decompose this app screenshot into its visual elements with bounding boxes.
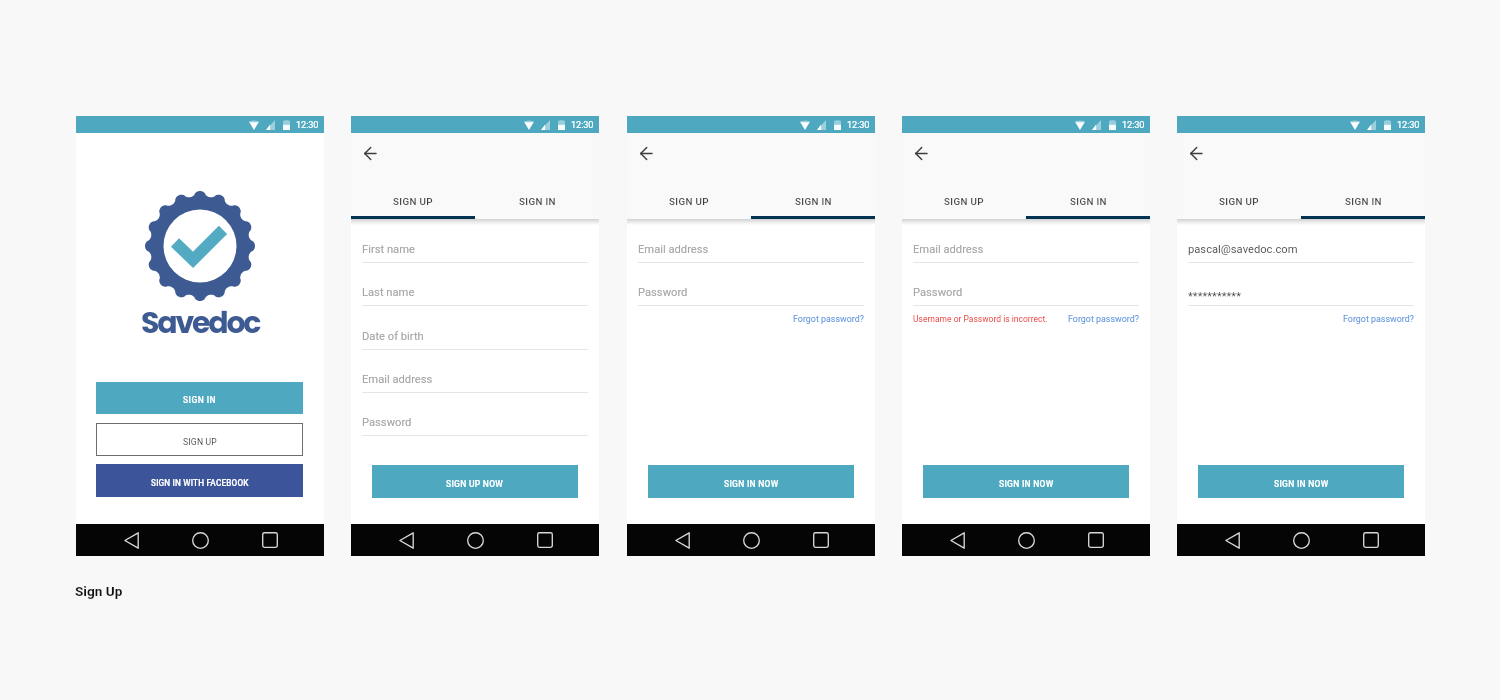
button[interactable]: SIGN IN WITH FACEBOOK (96, 464, 303, 497)
button[interactable]: Forgot password? (793, 314, 864, 324)
staticText: SIGN IN NOW (999, 479, 1054, 489)
button[interactable]: SIGN IN NOW (648, 465, 854, 498)
button[interactable]: SIGN UP NOW (372, 465, 578, 498)
button[interactable]: Email address (913, 238, 1139, 263)
staticText: SIGN IN (519, 196, 556, 207)
button[interactable]: Recent apps (257, 527, 283, 553)
staticText: SIGN IN (1070, 196, 1107, 207)
staticText: 12:30 (296, 119, 319, 130)
staticText: Last name (362, 286, 415, 299)
button[interactable]: SIGN IN (475, 188, 599, 215)
button[interactable]: Recent apps (808, 527, 834, 553)
staticText: Password (362, 416, 412, 429)
button[interactable]: Back (669, 527, 695, 553)
button[interactable]: SIGN IN (751, 188, 875, 215)
staticText: Email address (913, 243, 984, 256)
staticText: *********** (1188, 290, 1241, 303)
button[interactable]: Date of birth (362, 325, 588, 350)
staticText: SIGN UP (669, 196, 709, 207)
staticText: Password (913, 286, 963, 299)
button[interactable]: SIGN IN (1301, 188, 1425, 215)
staticText: SIGN IN (1345, 196, 1382, 207)
staticText: SIGN IN NOW (1274, 479, 1329, 489)
button[interactable]: Home (1288, 527, 1314, 553)
staticText: 12:30 (847, 119, 870, 130)
staticText: SIGN IN WITH FACEBOOK (151, 478, 249, 488)
button[interactable]: First name (362, 238, 588, 263)
staticText: SIGN IN (183, 395, 217, 405)
button[interactable]: Email address (638, 238, 864, 263)
staticText: Email address (362, 373, 433, 386)
button[interactable]: SIGN UP (1177, 188, 1301, 215)
button[interactable]: Recent apps (1358, 527, 1384, 553)
staticText: Sign Up (75, 583, 123, 599)
staticText: SIGN UP (183, 437, 217, 447)
staticText: Forgot password? (1343, 314, 1414, 324)
staticText: SIGN UP (1219, 196, 1259, 207)
button[interactable]: SIGN IN NOW (1198, 465, 1404, 498)
staticText: SIGN UP (393, 196, 433, 207)
staticText: 12:30 (1122, 119, 1145, 130)
staticText: Date of birth (362, 330, 424, 343)
button[interactable]: Last name (362, 281, 588, 306)
button[interactable]: SIGN UP (627, 188, 751, 215)
staticText: pascal@savedoc.com (1188, 243, 1298, 256)
staticText: SIGN UP (944, 196, 984, 207)
button[interactable]: Forgot password? (1068, 314, 1139, 324)
staticText: Password (638, 286, 688, 299)
button[interactable]: Forgot password? (1343, 314, 1414, 324)
staticText: 12:30 (571, 119, 594, 130)
button[interactable]: SIGN UP (96, 423, 303, 456)
button[interactable]: Password (362, 411, 588, 436)
button[interactable]: Navigate up (635, 144, 657, 162)
button[interactable]: SIGN IN NOW (923, 465, 1129, 498)
button[interactable]: Email address (362, 368, 588, 393)
staticText: Username or Password is incorrect. (913, 314, 1048, 324)
staticText: Forgot password? (1068, 314, 1139, 324)
button[interactable]: SIGN UP (902, 188, 1026, 215)
button[interactable]: Password (913, 281, 1139, 306)
button[interactable]: Home (187, 527, 213, 553)
button[interactable]: pascal@savedoc.com (1188, 238, 1414, 263)
button[interactable]: Home (738, 527, 764, 553)
button[interactable]: SIGN IN (96, 382, 303, 414)
staticText: Forgot password? (793, 314, 864, 324)
staticText: SIGN IN (795, 196, 832, 207)
staticText: 12:30 (1397, 119, 1420, 130)
button[interactable]: Navigate up (1185, 144, 1207, 162)
button[interactable]: Home (462, 527, 488, 553)
staticText: Savedoc (141, 302, 260, 344)
button[interactable]: Recent apps (532, 527, 558, 553)
button[interactable]: SIGN IN (1026, 188, 1150, 215)
button[interactable]: Back (1219, 527, 1245, 553)
button[interactable]: Username or Password is incorrect. (913, 314, 1048, 324)
button[interactable]: Home (1013, 527, 1039, 553)
staticText: SIGN UP NOW (446, 479, 504, 489)
button[interactable]: Password (638, 281, 864, 306)
button[interactable]: *********** (1188, 281, 1414, 306)
button[interactable]: Back (118, 527, 144, 553)
button[interactable]: Recent apps (1083, 527, 1109, 553)
button[interactable]: Back (944, 527, 970, 553)
button[interactable]: SIGN UP (351, 188, 475, 215)
button[interactable]: Navigate up (359, 144, 381, 162)
staticText: First name (362, 243, 415, 256)
staticText: SIGN IN NOW (724, 479, 779, 489)
button[interactable]: Navigate up (910, 144, 932, 162)
button[interactable]: Back (393, 527, 419, 553)
staticText: Email address (638, 243, 709, 256)
